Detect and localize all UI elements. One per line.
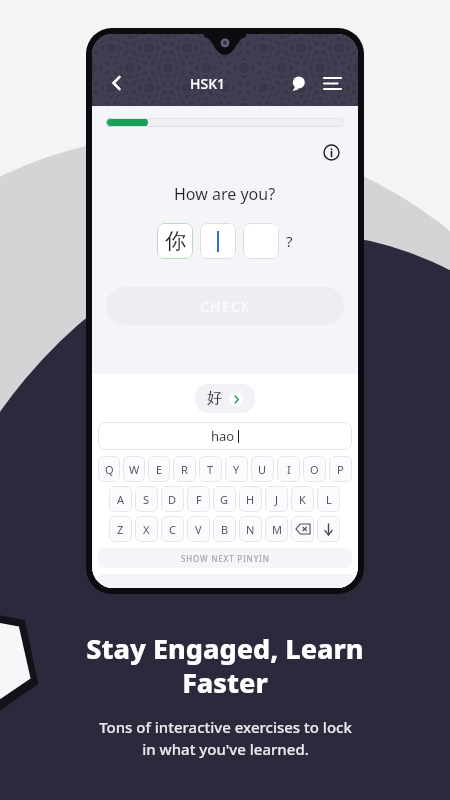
staticText: L bbox=[326, 492, 332, 507]
button[interactable]: G bbox=[213, 486, 236, 512]
staticText: D bbox=[168, 492, 177, 507]
staticText: How are you? bbox=[174, 183, 276, 205]
button[interactable]: Backspace bbox=[291, 516, 314, 542]
staticText: X bbox=[143, 522, 150, 537]
staticText: 你 bbox=[165, 228, 186, 254]
staticText: W bbox=[129, 462, 140, 477]
staticText: HSK1 bbox=[190, 74, 226, 93]
button[interactable]: U bbox=[251, 456, 274, 482]
button[interactable]: X bbox=[135, 516, 158, 542]
button[interactable]: I bbox=[277, 456, 300, 482]
button[interactable]: C bbox=[161, 516, 184, 542]
button[interactable]: 你 bbox=[157, 223, 193, 259]
button[interactable]: L bbox=[317, 486, 340, 512]
staticText: Q bbox=[105, 462, 114, 477]
button[interactable]: A bbox=[109, 486, 132, 512]
staticText: Z bbox=[117, 522, 124, 537]
button[interactable]: W bbox=[123, 456, 145, 482]
staticText: Y bbox=[233, 462, 240, 477]
staticText: P bbox=[337, 462, 344, 477]
button[interactable]: E bbox=[148, 456, 170, 482]
staticText: Stay Engaged, Learn Faster bbox=[86, 630, 364, 701]
button[interactable]: T bbox=[199, 456, 222, 482]
staticText: SHOW NEXT PINYIN bbox=[181, 553, 270, 564]
staticText: R bbox=[181, 462, 188, 477]
button[interactable]: Q bbox=[98, 456, 120, 482]
staticText: CHECK bbox=[200, 297, 251, 316]
button[interactable]: Back bbox=[102, 68, 132, 98]
staticText: C bbox=[169, 522, 176, 537]
button[interactable]: V bbox=[187, 516, 210, 542]
staticText: B bbox=[221, 522, 229, 537]
staticText: Tons of interactive exercises to lock in… bbox=[99, 717, 352, 760]
staticText: E bbox=[156, 462, 163, 477]
button[interactable]: S bbox=[135, 486, 158, 512]
staticText: T bbox=[207, 462, 214, 477]
button[interactable]: B bbox=[213, 516, 236, 542]
button[interactable]: F bbox=[187, 486, 210, 512]
button[interactable]: Z bbox=[109, 516, 132, 542]
button[interactable]: hao bbox=[98, 422, 352, 450]
staticText: V bbox=[195, 522, 202, 537]
button[interactable]: Hide keyboard bbox=[317, 516, 340, 542]
staticText: K bbox=[299, 492, 306, 507]
button[interactable]: Y bbox=[225, 456, 248, 482]
button[interactable]: P bbox=[329, 456, 352, 482]
button[interactable]: K bbox=[291, 486, 314, 512]
staticText: H bbox=[246, 492, 255, 507]
button[interactable]: O bbox=[303, 456, 326, 482]
staticText: F bbox=[196, 492, 202, 507]
staticText: G bbox=[220, 492, 229, 507]
button[interactable]: J bbox=[265, 486, 288, 512]
staticText: hao bbox=[211, 427, 235, 445]
button[interactable] bbox=[200, 223, 236, 259]
button[interactable]: Menu bbox=[318, 69, 346, 97]
button[interactable]: H bbox=[239, 486, 262, 512]
staticText: O bbox=[310, 462, 319, 477]
staticText: S bbox=[143, 492, 150, 507]
staticText: ? bbox=[286, 231, 293, 251]
button[interactable]: R bbox=[173, 456, 196, 482]
button[interactable]: D bbox=[161, 486, 184, 512]
staticText: I bbox=[287, 462, 291, 477]
button[interactable]: M bbox=[265, 516, 288, 542]
staticText: M bbox=[272, 522, 282, 537]
button[interactable] bbox=[243, 223, 279, 259]
button[interactable]: N bbox=[239, 516, 262, 542]
button[interactable]: 好 bbox=[195, 384, 255, 413]
staticText: 好 bbox=[207, 389, 222, 408]
staticText: N bbox=[246, 522, 255, 537]
staticText: J bbox=[275, 492, 279, 507]
button[interactable]: SHOW NEXT PINYIN bbox=[98, 548, 352, 568]
staticText: A bbox=[117, 492, 125, 507]
button[interactable]: Information bbox=[318, 139, 344, 165]
button[interactable]: Messages bbox=[284, 69, 312, 97]
staticText: U bbox=[258, 462, 267, 477]
